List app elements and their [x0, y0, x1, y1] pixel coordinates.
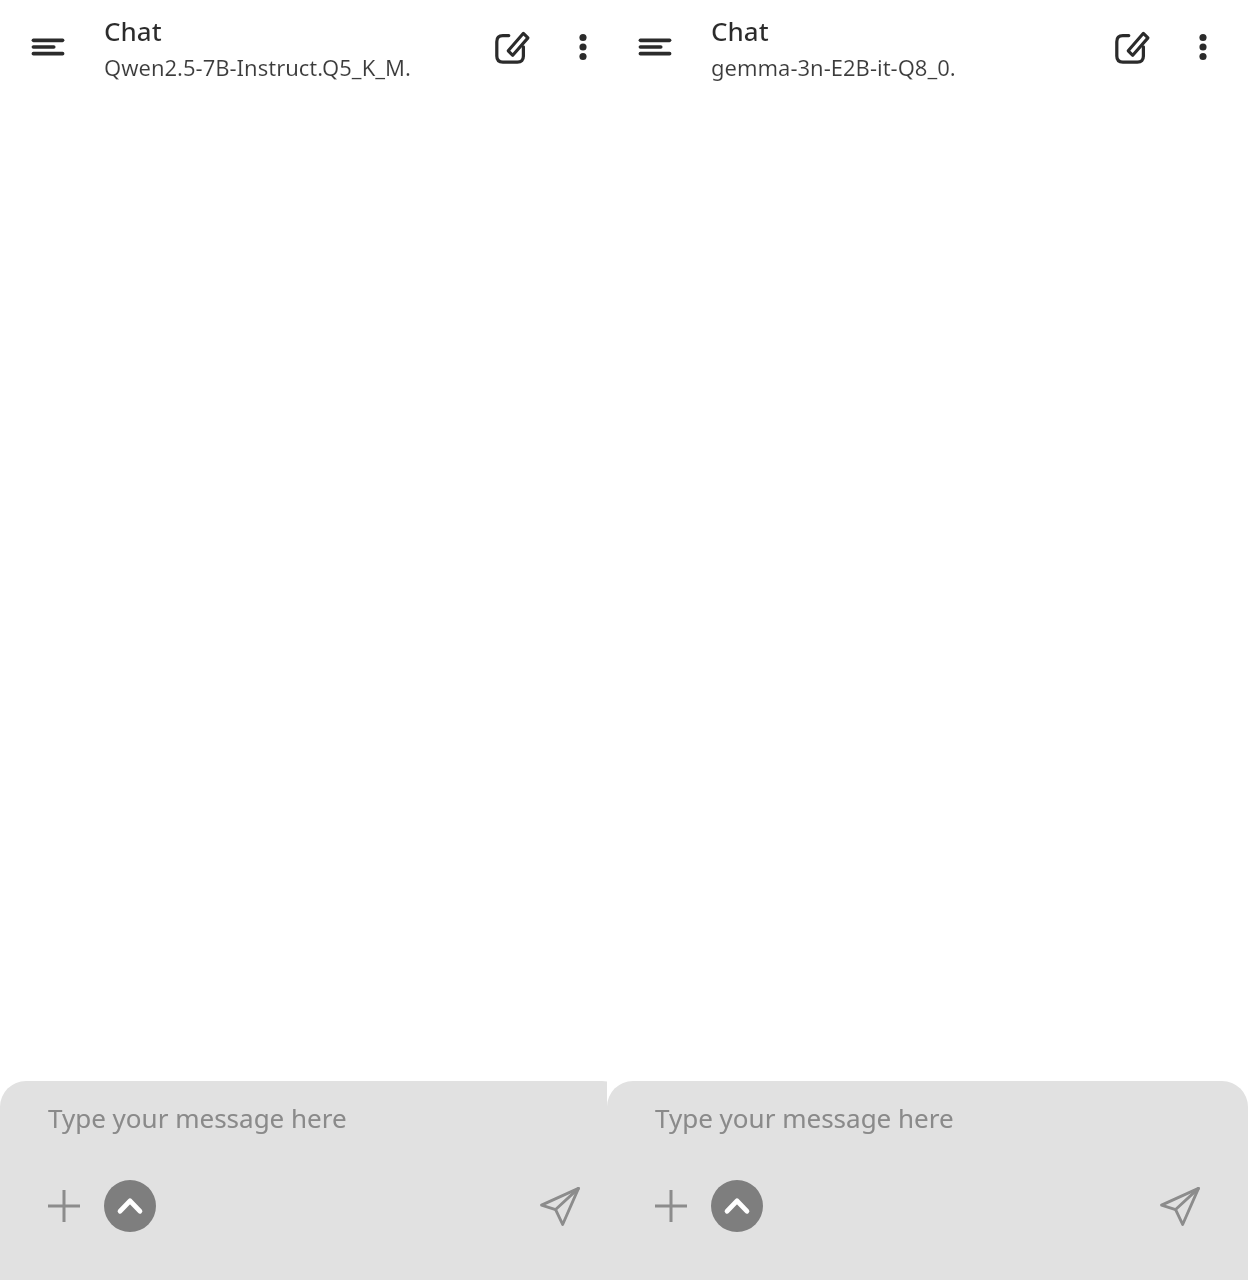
button[interactable]: More options [558, 22, 608, 72]
button[interactable]: Expand options [104, 1180, 156, 1232]
staticText: Type your message here [48, 1100, 347, 1135]
staticText: gemma-3n-E2B-it-Q8_0. [711, 52, 956, 82]
button[interactable]: Send [1152, 1178, 1208, 1234]
button[interactable]: Menu [22, 21, 74, 73]
button[interactable]: Chat [711, 13, 1104, 82]
staticText: Chat [104, 13, 162, 48]
button[interactable]: Add attachment [645, 1180, 697, 1232]
button[interactable]: Send [532, 1178, 588, 1234]
staticText: Qwen2.5-7B-Instruct.Q5_K_M. [104, 52, 411, 82]
button[interactable]: Chat [104, 13, 484, 82]
staticText: Type your message here [655, 1100, 954, 1135]
button[interactable]: More options [1178, 22, 1228, 72]
button[interactable]: Type your message here [607, 1081, 1248, 1154]
button[interactable]: Add attachment [38, 1180, 90, 1232]
button[interactable]: Expand options [711, 1180, 763, 1232]
staticText: Chat [711, 13, 769, 48]
button[interactable]: New chat [484, 19, 540, 75]
button[interactable]: Menu [629, 21, 681, 73]
button[interactable]: Type your message here [0, 1081, 628, 1154]
button[interactable]: New chat [1104, 19, 1160, 75]
